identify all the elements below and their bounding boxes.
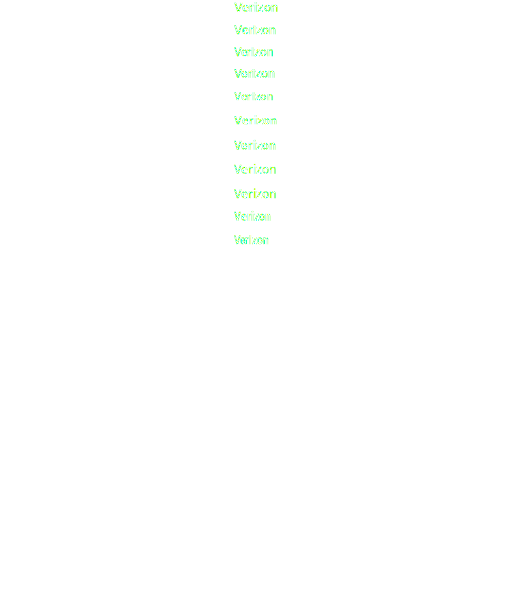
staticText: Verizon — [234, 22, 276, 37]
staticText: Verizon — [234, 0, 278, 14]
staticText: Verizon — [234, 67, 275, 80]
staticText: Verizon — [234, 111, 277, 129]
staticText: Verizon — [234, 232, 269, 248]
staticText: Verizon — [234, 185, 277, 202]
staticText: Verizon — [234, 45, 274, 59]
staticText: Verizon — [234, 161, 277, 177]
staticText: Verizon — [234, 88, 274, 103]
staticText: Verizon — [234, 210, 271, 224]
staticText: Verizon — [234, 137, 276, 153]
